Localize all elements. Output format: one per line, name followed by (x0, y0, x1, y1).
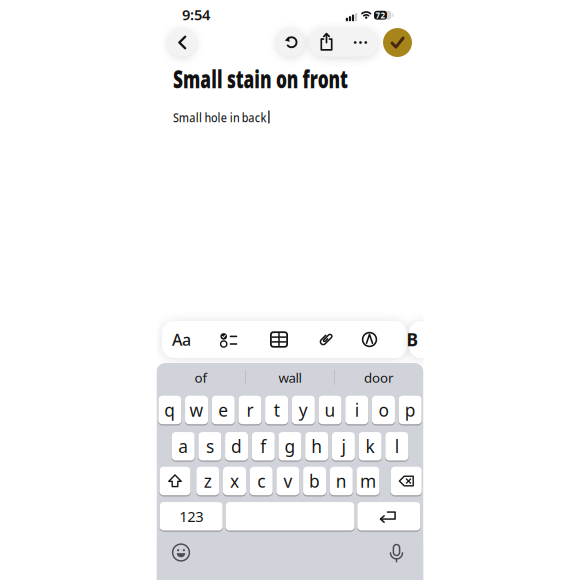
staticText: r (246, 398, 253, 421)
button[interactable]: Done (383, 28, 412, 57)
staticText: q (164, 398, 175, 421)
staticText: o (378, 398, 388, 421)
staticText: door (364, 369, 394, 386)
button[interactable]: Bold (403, 321, 421, 358)
staticText: j (341, 435, 345, 458)
button[interactable]: b (303, 467, 326, 495)
staticText: p (405, 398, 416, 421)
staticText: h (311, 435, 322, 458)
button[interactable]: Undo (276, 28, 305, 57)
button[interactable]: Draw (349, 321, 389, 358)
staticText: v (283, 469, 292, 492)
staticText: g (284, 435, 295, 458)
staticText: B (406, 328, 418, 351)
staticText: Small hole in back (173, 108, 288, 126)
button[interactable]: Shift (159, 467, 190, 495)
button[interactable]: Return (357, 502, 420, 530)
button[interactable]: r (238, 396, 261, 424)
staticText: b (309, 469, 320, 492)
staticText: f (260, 435, 266, 458)
button[interactable]: n (330, 467, 353, 495)
staticText: a (178, 435, 188, 458)
staticText: l (395, 435, 399, 458)
button[interactable]: k (359, 432, 382, 461)
staticText: z (204, 469, 212, 492)
button[interactable]: y (292, 396, 315, 424)
button[interactable]: Table (259, 321, 299, 358)
button[interactable]: Delete (391, 467, 422, 495)
button[interactable]: i (345, 396, 368, 424)
button[interactable]: v (276, 467, 299, 495)
staticText: t (274, 398, 280, 421)
button[interactable]: 123 (160, 502, 223, 530)
staticText: c (257, 469, 265, 492)
staticText: 9:54 (182, 5, 210, 24)
staticText: w (189, 398, 203, 421)
button[interactable]: e (212, 396, 235, 424)
button[interactable]: Dictate (384, 540, 408, 564)
button[interactable]: Text format (161, 321, 201, 358)
staticText: s (206, 435, 214, 458)
button[interactable]: Emoji (169, 540, 193, 564)
button[interactable]: o (372, 396, 395, 424)
button[interactable]: Share (309, 28, 343, 57)
staticText: x (230, 469, 239, 492)
button[interactable]: g (278, 432, 301, 461)
button[interactable]: t (265, 396, 288, 424)
button[interactable]: z (196, 467, 219, 495)
staticText: wall (278, 369, 301, 386)
staticText: Aa (172, 329, 191, 350)
button[interactable]: d (225, 432, 248, 461)
staticText: n (336, 469, 347, 492)
button[interactable]: c (250, 467, 273, 495)
button[interactable]: Back (168, 28, 196, 57)
staticText: Small stain on front (173, 63, 416, 95)
button[interactable]: Checklist (209, 321, 249, 358)
staticText: of (194, 369, 207, 386)
button[interactable]: s (198, 432, 221, 461)
staticText: y (299, 398, 308, 421)
staticText: 72 (376, 10, 386, 21)
staticText: m (360, 469, 376, 492)
staticText: k (366, 435, 375, 458)
button[interactable]: q (158, 396, 181, 424)
button[interactable]: p (399, 396, 422, 424)
button[interactable]: w (185, 396, 208, 424)
button[interactable]: j (332, 432, 355, 461)
button[interactable]: u (318, 396, 341, 424)
button[interactable]: More (343, 28, 377, 57)
button[interactable]: h (305, 432, 328, 461)
staticText: e (218, 398, 228, 421)
staticText: u (324, 398, 335, 421)
button[interactable]: x (223, 467, 246, 495)
staticText: i (355, 398, 359, 421)
button[interactable]: m (356, 467, 379, 495)
button[interactable]: Attach (305, 321, 345, 358)
staticText: d (231, 435, 242, 458)
staticText: 123 (179, 507, 203, 526)
button[interactable]: a (172, 432, 195, 461)
button[interactable]: l (385, 432, 408, 461)
button[interactable]: f (252, 432, 275, 461)
